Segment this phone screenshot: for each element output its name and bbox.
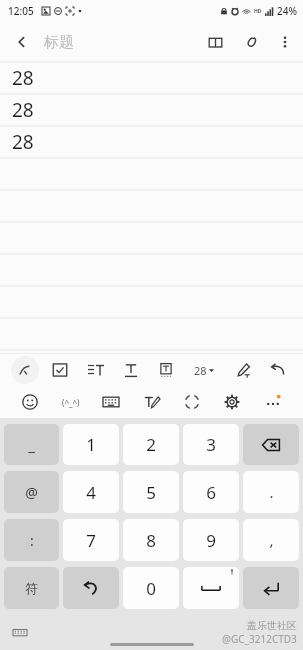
staticText: 符 <box>25 580 38 596</box>
button[interactable]: Highlighter <box>229 356 257 384</box>
button[interactable]: 符 <box>4 567 59 609</box>
staticText: 6 <box>206 481 216 504</box>
button[interactable]: , <box>243 519 299 561</box>
button[interactable]: 28 <box>187 356 221 384</box>
staticText: @GC_3212CTD3 <box>222 632 297 646</box>
staticText: , <box>269 530 274 550</box>
button[interactable]: (^_^) <box>57 388 85 416</box>
staticText: 28 <box>12 97 34 123</box>
button[interactable]: Checklist <box>46 356 74 384</box>
button[interactable]: Handwriting <box>11 356 39 384</box>
staticText: _ <box>28 435 35 455</box>
button[interactable]: 6 <box>183 471 239 513</box>
staticText: . <box>269 482 274 502</box>
button[interactable]: Text style <box>117 356 145 384</box>
staticText: (^_^) <box>62 397 80 408</box>
button[interactable]: : <box>4 519 59 561</box>
button[interactable]: More <box>259 388 287 416</box>
button[interactable]: Move <box>178 388 206 416</box>
button[interactable]: Emoji <box>16 388 44 416</box>
button[interactable]: 4 <box>63 471 119 513</box>
button[interactable]: Settings <box>218 388 246 416</box>
staticText: HD <box>254 8 262 15</box>
button[interactable]: Reading mode <box>197 24 233 60</box>
button[interactable]: _ <box>4 424 59 465</box>
button[interactable]: 9 <box>183 519 239 561</box>
staticText: 8 <box>146 529 156 552</box>
button[interactable]: . <box>243 471 299 513</box>
staticText: 24% <box>277 4 297 18</box>
button[interactable]: Keyboard <box>97 388 125 416</box>
button[interactable]: Text box <box>152 356 180 384</box>
staticText: : <box>30 531 34 550</box>
button[interactable]: 1 <box>63 424 119 465</box>
button[interactable]: 5 <box>123 471 179 513</box>
button[interactable]: 2 <box>123 424 179 465</box>
button[interactable]: 3 <box>183 424 239 465</box>
button[interactable]: Backspace <box>243 424 299 465</box>
button[interactable]: More options <box>269 26 301 58</box>
button[interactable]: Enter <box>243 567 299 609</box>
staticText: 5 <box>146 481 156 504</box>
staticText: 1 <box>86 433 96 456</box>
button[interactable]: Undo <box>63 567 119 609</box>
staticText: 3 <box>206 433 216 456</box>
staticText: 0 <box>146 577 156 600</box>
staticText: 盖乐世社区 <box>247 619 297 632</box>
staticText: 28 <box>194 363 207 378</box>
staticText: 标题 <box>44 33 74 52</box>
staticText: @ <box>25 483 38 502</box>
button[interactable]: 0 <box>123 567 179 609</box>
staticText: 12:05 <box>8 4 34 18</box>
button[interactable]: @ <box>4 471 59 513</box>
staticText: 28 <box>12 129 34 155</box>
button[interactable]: Space <box>183 567 239 609</box>
button[interactable]: Hide keyboard <box>8 621 32 645</box>
staticText: 7 <box>86 529 96 552</box>
button[interactable]: Back <box>4 24 40 60</box>
button[interactable]: Undo <box>264 356 292 384</box>
button[interactable]: 8 <box>123 519 179 561</box>
button[interactable]: Paragraph style <box>82 356 110 384</box>
staticText: 2 <box>146 433 156 456</box>
button[interactable]: Attach <box>233 24 269 60</box>
button[interactable]: 7 <box>63 519 119 561</box>
staticText: 9 <box>206 529 216 552</box>
button[interactable]: Handwriting input <box>138 388 166 416</box>
staticText: 28 <box>12 65 34 91</box>
staticText: 4 <box>86 481 96 504</box>
